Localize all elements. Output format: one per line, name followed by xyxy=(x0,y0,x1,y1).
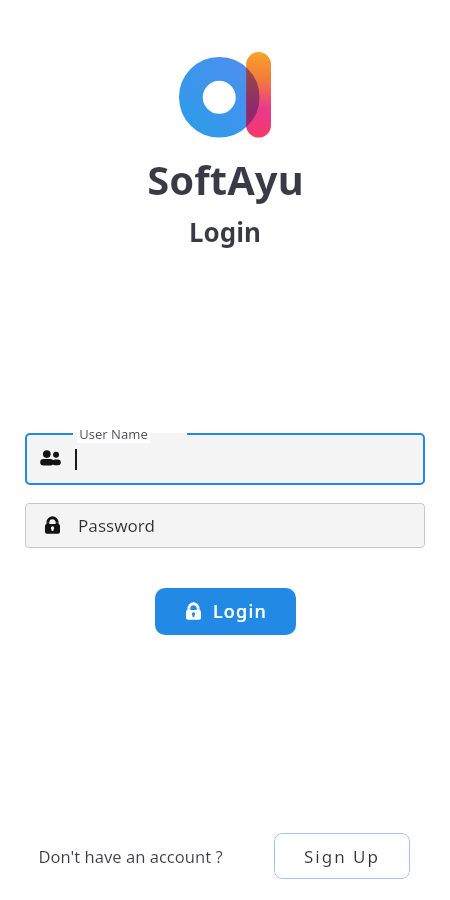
staticText: Sign Up xyxy=(304,845,380,868)
staticText: Password xyxy=(78,514,155,537)
other: Password xyxy=(43,516,62,535)
button[interactable]: User Name xyxy=(25,433,425,485)
button[interactable]: Sign Up xyxy=(274,833,410,879)
staticText: Don't have an account ? xyxy=(38,845,223,867)
staticText: SoftAyu xyxy=(147,152,304,206)
staticText: Login xyxy=(213,599,267,624)
staticText: Login xyxy=(189,214,261,249)
other: User name xyxy=(39,448,61,470)
staticText: User Name xyxy=(79,425,148,443)
button[interactable]: Password xyxy=(25,503,425,548)
button[interactable]: Login xyxy=(155,588,296,635)
